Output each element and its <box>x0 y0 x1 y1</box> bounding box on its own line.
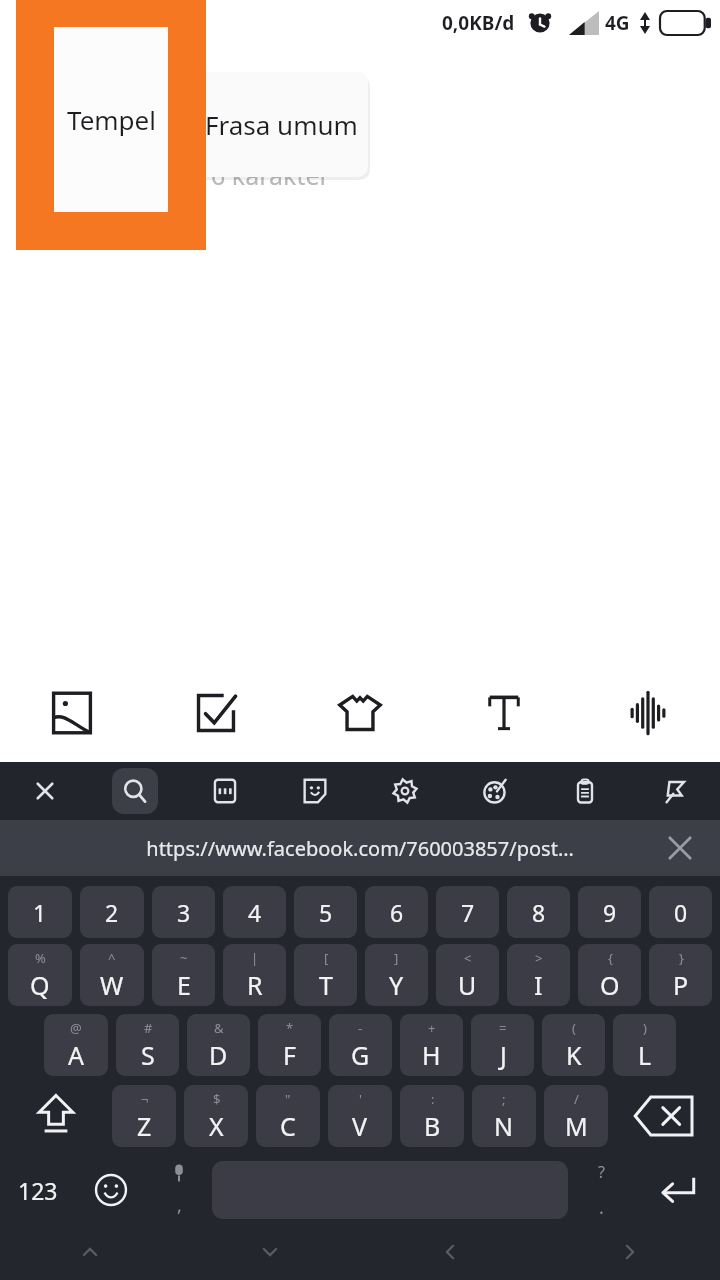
staticText: 123 <box>18 1175 58 1206</box>
staticText: R <box>247 968 263 1002</box>
button[interactable]: ( <box>542 1014 605 1076</box>
button[interactable]: Frasa umum <box>194 72 368 177</box>
button[interactable]: - <box>329 1014 392 1076</box>
button[interactable]: ) <box>613 1014 676 1076</box>
button[interactable]: : <box>400 1085 464 1147</box>
button[interactable]: Tempel <box>55 72 368 177</box>
staticText: Tempel <box>80 107 169 142</box>
staticText: N <box>494 1109 514 1143</box>
button[interactable]: Theme <box>450 762 540 820</box>
button[interactable]: Backspace <box>612 1080 716 1152</box>
staticText: 4G <box>605 10 630 36</box>
button[interactable]: Tempel <box>55 72 194 177</box>
button[interactable]: 5 <box>294 886 357 938</box>
button[interactable]: & <box>187 1014 250 1076</box>
button[interactable]: [ <box>294 944 357 1006</box>
button[interactable]: 4 <box>223 886 286 938</box>
staticText: L <box>638 1038 652 1072</box>
staticText: U <box>458 968 477 1002</box>
staticText: O <box>600 968 620 1002</box>
button[interactable]: Sticker <box>270 762 360 820</box>
button[interactable]: > <box>507 944 570 1006</box>
button[interactable]: Dismiss suggestion <box>660 828 700 868</box>
button[interactable]: 2 <box>80 886 144 938</box>
button[interactable]: # <box>116 1014 179 1076</box>
button[interactable]: { <box>578 944 641 1006</box>
button[interactable]: Move down <box>180 1228 360 1276</box>
staticText: } <box>679 949 684 967</box>
button[interactable]: Emoji <box>76 1152 146 1228</box>
button[interactable]: Settings <box>360 762 450 820</box>
staticText: ~ <box>180 949 188 967</box>
button[interactable]: 8 <box>507 886 570 938</box>
staticText: / <box>574 1090 579 1108</box>
button[interactable]: Pin <box>630 762 720 820</box>
staticText: 7 <box>461 897 475 928</box>
staticText: Frasa umum <box>205 107 358 142</box>
button[interactable]: Move left <box>360 1228 540 1276</box>
staticText: 4 <box>248 897 262 928</box>
button[interactable]: ; <box>472 1085 536 1147</box>
button[interactable]: / <box>544 1085 608 1147</box>
button[interactable]: | <box>223 944 286 1006</box>
staticText: Y <box>389 968 404 1002</box>
staticText: | <box>251 949 259 967</box>
button[interactable]: ~ <box>152 944 215 1006</box>
staticText: 8 <box>532 897 546 928</box>
button[interactable]: " <box>256 1085 320 1147</box>
button[interactable]: Move right <box>540 1228 720 1276</box>
button[interactable]: Add image <box>0 680 144 746</box>
button[interactable]: https://www.facebook.com/760003857/post… <box>0 820 720 876</box>
staticText: V <box>352 1109 368 1143</box>
button[interactable]: Text <box>432 680 576 746</box>
button[interactable]: Move up <box>0 1228 180 1276</box>
staticText: I <box>534 968 543 1002</box>
button[interactable]: * <box>258 1014 321 1076</box>
button[interactable]: 1 <box>8 886 72 938</box>
button[interactable]: Voice input and comma <box>146 1152 212 1228</box>
button[interactable]: + <box>400 1014 463 1076</box>
staticText: ) <box>643 1019 647 1037</box>
button[interactable]: Enter <box>634 1152 720 1228</box>
staticText: - <box>358 1019 363 1037</box>
staticText: G <box>351 1038 370 1072</box>
button[interactable]: ] <box>365 944 428 1006</box>
button[interactable]: ' <box>328 1085 392 1147</box>
button[interactable]: @ <box>44 1014 108 1076</box>
staticText: H <box>422 1038 441 1072</box>
button[interactable]: Shift <box>4 1080 108 1152</box>
button[interactable]: 9 <box>578 886 641 938</box>
button[interactable]: = <box>471 1014 534 1076</box>
staticText: 3 <box>177 897 191 928</box>
button[interactable]: 7 <box>436 886 499 938</box>
button[interactable]: Search <box>90 762 180 820</box>
staticText: ] <box>394 949 399 967</box>
button[interactable]: GIF <box>180 762 270 820</box>
button[interactable]: Checklist <box>144 680 288 746</box>
button[interactable]: 3 <box>152 886 215 938</box>
button[interactable]: 6 <box>365 886 428 938</box>
staticText: . <box>599 1195 604 1220</box>
button[interactable]: Clipboard <box>540 762 630 820</box>
staticText: + <box>428 1019 436 1037</box>
button[interactable]: ^ <box>80 944 144 1006</box>
staticText: ( <box>572 1019 576 1037</box>
button[interactable]: Period <box>568 1152 634 1228</box>
staticText: # <box>144 1019 153 1037</box>
button[interactable]: < <box>436 944 499 1006</box>
button[interactable]: Clothing <box>288 680 432 746</box>
staticText: , <box>177 1193 182 1218</box>
button[interactable]: Audio <box>576 680 720 746</box>
staticText: > <box>535 949 543 967</box>
button[interactable]: } <box>649 944 712 1006</box>
button[interactable]: $ <box>184 1085 248 1147</box>
staticText: % <box>35 949 46 967</box>
button[interactable]: Close <box>0 762 90 820</box>
staticText: A <box>68 1038 84 1072</box>
button[interactable]: % <box>8 944 72 1006</box>
button[interactable]: ¬ <box>112 1085 176 1147</box>
button[interactable]: 123 <box>0 1152 76 1228</box>
staticText: T <box>319 968 333 1002</box>
button[interactable]: 0 <box>649 886 712 938</box>
